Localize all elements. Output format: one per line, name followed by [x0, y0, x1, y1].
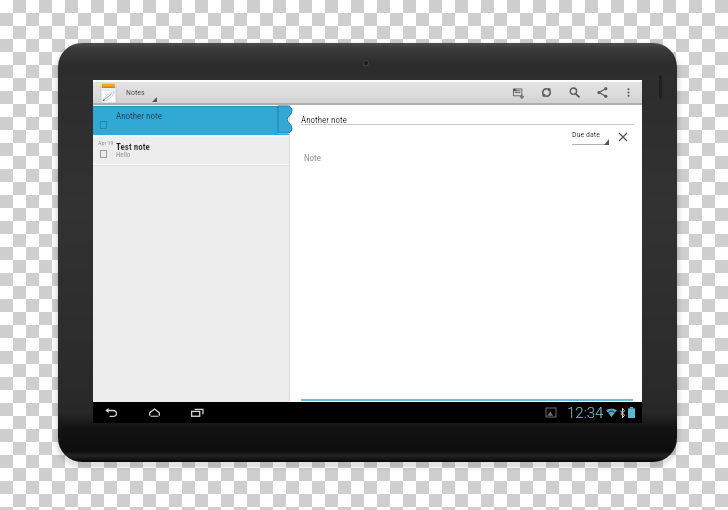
- staticText: Hello: [116, 151, 131, 159]
- button[interactable]: Apr 19: [93, 137, 290, 164]
- button[interactable]: New note: [504, 82, 532, 103]
- staticText: Another note: [116, 111, 162, 122]
- staticText: 12:34: [567, 404, 604, 422]
- staticText: Notes: [126, 88, 145, 97]
- button[interactable]: Share: [588, 82, 616, 103]
- staticText: Another note: [301, 115, 347, 126]
- button[interactable]: Another note: [93, 107, 290, 135]
- staticText: Due date: [572, 130, 600, 139]
- button[interactable]: Due date: [570, 129, 612, 147]
- button[interactable]: Recents: [186, 402, 208, 423]
- button[interactable]: Search: [560, 82, 588, 103]
- button[interactable]: Refresh: [532, 82, 560, 103]
- button[interactable]: Home: [143, 402, 165, 423]
- button[interactable]: More options: [616, 82, 640, 103]
- button[interactable]: Back: [100, 402, 122, 423]
- button[interactable]: Notes: [93, 82, 165, 103]
- button[interactable]: Clear due date: [616, 130, 629, 143]
- staticText: Apr 19: [98, 139, 114, 146]
- staticText: Test note: [116, 142, 150, 153]
- staticText: Note: [304, 153, 321, 164]
